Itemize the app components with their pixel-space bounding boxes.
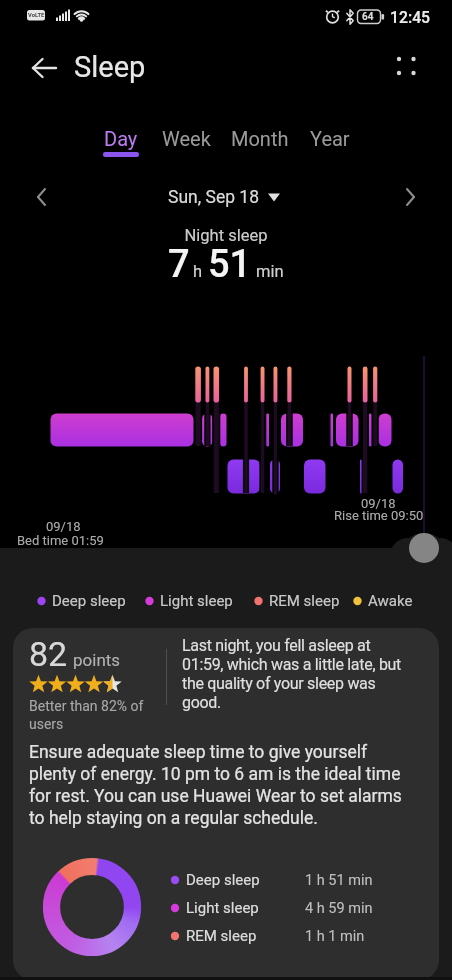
staticText: 82: [29, 634, 68, 674]
staticText: 4 h 59 min: [305, 900, 373, 917]
staticText: Last night, you fell asleep at 01:59, wh…: [182, 636, 438, 712]
staticText: Ensure adequate sleep time to give yours…: [29, 742, 439, 829]
button[interactable]: Sun, Sep 18: [160, 186, 290, 212]
staticText: Light sleep: [160, 592, 233, 610]
staticText: 64: [362, 11, 374, 23]
staticText: min: [256, 262, 284, 281]
staticText: REM sleep: [186, 927, 257, 945]
staticText: Awake: [368, 592, 413, 610]
button[interactable]: Year: [306, 122, 354, 162]
staticText: VoLTE: [28, 12, 45, 19]
staticText: Deep sleep: [52, 592, 126, 610]
staticText: Sun, Sep 18: [168, 187, 259, 208]
staticText: 12:45: [390, 8, 431, 27]
staticText: Night sleep: [0, 226, 452, 245]
staticText: 09/18: [46, 519, 81, 534]
staticText: Deep sleep: [186, 871, 260, 889]
button[interactable]: Month: [226, 122, 294, 162]
staticText: Rise time 09:50: [334, 508, 424, 523]
button[interactable]: Week: [158, 122, 214, 162]
staticText: Week: [162, 127, 211, 150]
button[interactable]: Day: [96, 122, 146, 162]
staticText: 51: [208, 242, 252, 287]
staticText: 09/18: [361, 496, 396, 511]
staticText: Day: [104, 127, 138, 150]
staticText: Bed time 01:59: [17, 533, 104, 548]
staticText: Month: [231, 127, 289, 150]
button[interactable]: [28, 182, 56, 212]
staticText: h: [193, 262, 203, 281]
staticText: Sleep: [74, 50, 146, 84]
staticText: REM sleep: [269, 592, 340, 610]
staticText: Light sleep: [186, 899, 259, 917]
staticText: 7: [168, 242, 190, 287]
button[interactable]: [13, 628, 439, 980]
staticText: 1 h 1 min: [305, 928, 365, 945]
staticText: Better than 82% of users: [29, 698, 144, 733]
staticText: 1 h 51 min: [305, 872, 373, 889]
button[interactable]: [22, 54, 62, 84]
button[interactable]: [409, 533, 439, 563]
button[interactable]: [396, 182, 424, 212]
staticText: Year: [310, 127, 350, 150]
staticText: points: [73, 650, 121, 670]
button[interactable]: [389, 49, 425, 85]
